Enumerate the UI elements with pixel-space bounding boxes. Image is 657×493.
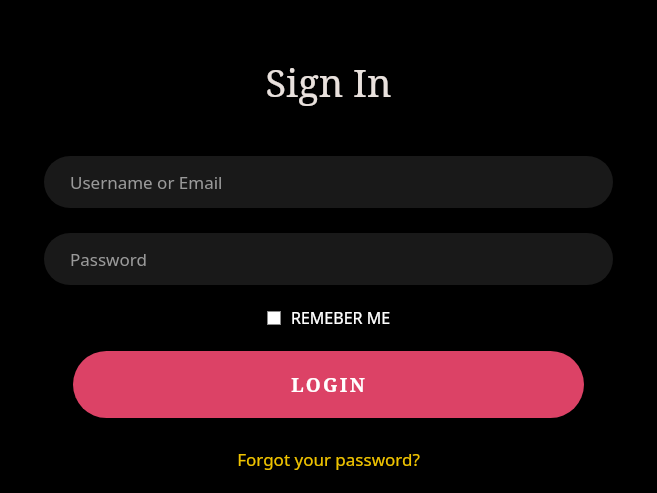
staticText: Username or Email (70, 171, 223, 194)
staticText: Sign In (265, 56, 392, 108)
button[interactable]: Password (44, 233, 613, 285)
button[interactable]: Username or Email (44, 156, 613, 208)
button[interactable]: Remember me checkbox (263, 304, 395, 332)
other: Remember me checkbox (267, 311, 281, 325)
staticText: LOGIN (291, 372, 367, 398)
button[interactable]: LOGIN (73, 351, 584, 418)
button[interactable]: Forgot your password? (229, 445, 428, 474)
staticText: REMEBER ME (291, 307, 391, 329)
staticText: Forgot your password? (237, 448, 420, 471)
staticText: Password (70, 248, 147, 271)
